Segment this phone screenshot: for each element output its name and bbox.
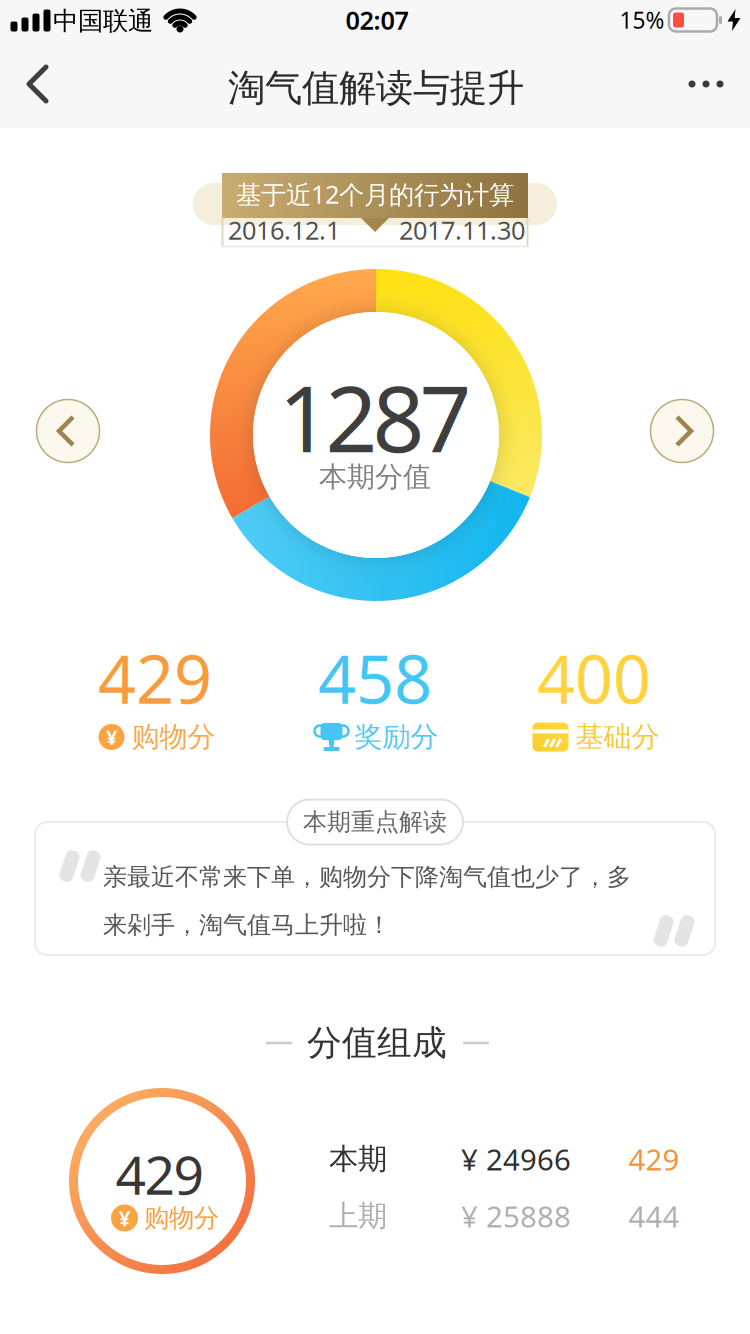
staticText: 02:07 [345, 3, 408, 37]
staticText: ¥ [118, 1204, 130, 1232]
staticText: 429 [98, 634, 212, 722]
staticText: 本期 [329, 1141, 387, 1177]
staticText: 购物分 [131, 720, 215, 754]
staticText: 429 [115, 1139, 204, 1209]
staticText: 15% [619, 5, 664, 35]
staticText: 1287 [278, 357, 471, 477]
button[interactable] [674, 62, 738, 106]
button[interactable] [36, 399, 99, 462]
staticText: 400 [537, 634, 651, 722]
staticText: 分值组成 [307, 1022, 447, 1064]
staticText: 458 [318, 634, 432, 722]
staticText: 奖励分 [354, 720, 438, 754]
staticText: 上期 [329, 1198, 387, 1234]
staticText: 基础分 [575, 720, 659, 754]
staticText: 444 [628, 1196, 679, 1235]
staticText: 中国联通 [53, 5, 153, 36]
staticText: 亲最近不常来下单，购物分下降淘气值也少了，多 [103, 862, 631, 892]
staticText: 基于近12个月的行为计算 [236, 177, 514, 211]
staticText: 来剁手，淘气值马上升啦！ [103, 910, 391, 940]
staticText: 429 [628, 1139, 679, 1178]
staticText: 购物分 [144, 1202, 219, 1233]
staticText: 2017.11.30 [399, 213, 525, 247]
staticText: 本期重点解读 [303, 807, 447, 837]
staticText: 2016.12.1 [228, 213, 340, 247]
staticText: ¥ 25888 [461, 1196, 571, 1235]
button[interactable] [650, 399, 713, 462]
staticText: ¥ [106, 724, 117, 750]
staticText: ¥ 24966 [461, 1139, 571, 1178]
staticText: 本期分值 [319, 460, 431, 494]
staticText: 淘气值解读与提升 [228, 65, 524, 111]
button[interactable] [17, 55, 59, 113]
